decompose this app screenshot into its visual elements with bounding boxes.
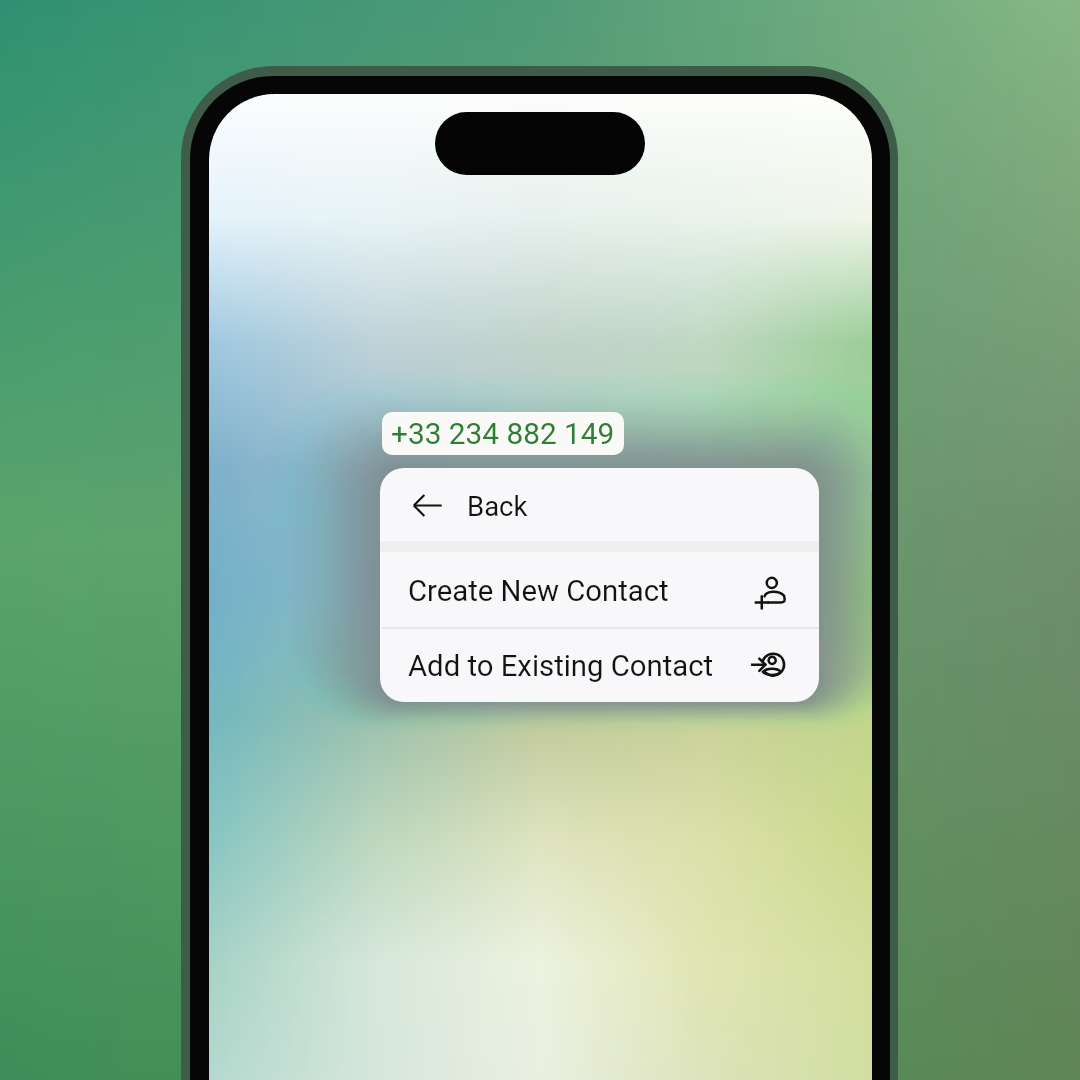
staticText: Back <box>467 490 528 522</box>
button[interactable]: Create New Contact <box>380 552 819 627</box>
other: Add to existing contact <box>746 640 794 688</box>
staticText: +33 234 882 149 <box>391 416 615 451</box>
staticText: Create New Contact <box>408 574 669 608</box>
button[interactable]: Add to Existing Contact <box>380 629 819 700</box>
button[interactable]: +33 234 882 149 <box>382 412 624 455</box>
other: Create new contact <box>748 564 796 612</box>
button[interactable]: Back <box>380 468 819 541</box>
other: Back <box>413 491 442 520</box>
staticText: Add to Existing Contact <box>408 649 714 683</box>
